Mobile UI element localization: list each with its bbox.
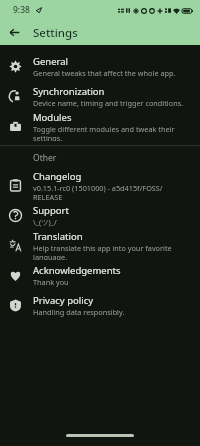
- staticText: General: [33, 55, 69, 68]
- staticText: Acknowledgements: [33, 264, 121, 277]
- button[interactable]: Changelog: [0, 170, 200, 200]
- staticText: Modules: [33, 111, 72, 124]
- button[interactable]: Back: [5, 23, 24, 42]
- button[interactable]: Acknowledgements: [0, 260, 200, 290]
- staticText: Toggle different modules and tweak their…: [33, 124, 190, 141]
- staticText: Changelog: [33, 170, 82, 183]
- button[interactable]: Synchronization: [0, 81, 200, 111]
- staticText: \_(ツ)_/: [33, 217, 57, 227]
- staticText: Other: [33, 152, 57, 164]
- staticText: Device name, timing and trigger conditio…: [33, 98, 184, 108]
- button[interactable]: General: [0, 51, 200, 81]
- staticText: Privacy policy: [33, 294, 94, 307]
- staticText: General tweaks that affect the whole app…: [33, 68, 176, 78]
- button[interactable]: Modules: [0, 111, 200, 141]
- staticText: Support: [33, 204, 69, 217]
- button[interactable]: Support: [0, 200, 200, 230]
- staticText: Translation: [33, 230, 83, 243]
- staticText: Thank you: [33, 277, 69, 287]
- staticText: Handling data responsibly.: [33, 307, 125, 317]
- staticText: Settings: [33, 25, 78, 41]
- button[interactable]: Translation: [0, 230, 200, 260]
- staticText: 9:38: [13, 4, 30, 16]
- button[interactable]: Privacy policy: [0, 290, 200, 320]
- staticText: Synchronization: [33, 85, 105, 98]
- staticText: v0.15.1-rc0 (1501000) - a5d415f/FOSS/REL…: [33, 183, 190, 200]
- staticText: Help translate this app into your favori…: [33, 243, 190, 260]
